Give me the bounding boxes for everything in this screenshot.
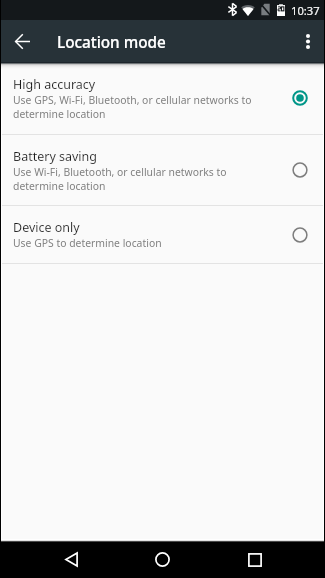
- staticText: Location mode: [57, 32, 166, 53]
- staticText: Use GPS, Wi-Fi, Bluetooth, or cellular n…: [13, 93, 258, 121]
- staticText: Battery saving: [13, 148, 97, 165]
- staticText: 10:37: [291, 3, 320, 18]
- button[interactable]: Back: [53, 541, 90, 578]
- button[interactable]: High accuracy: [0, 62, 325, 134]
- button[interactable]: Device only: [0, 206, 325, 263]
- staticText: Use GPS to determine location: [13, 236, 162, 250]
- staticText: High accuracy: [13, 76, 96, 93]
- button[interactable]: More options: [294, 20, 322, 62]
- button[interactable]: Recent apps: [236, 541, 273, 578]
- staticText: Device only: [13, 219, 80, 236]
- staticText: Use Wi-Fi, Bluetooth, or cellular networ…: [13, 165, 258, 193]
- button[interactable]: Back: [7, 20, 37, 62]
- button[interactable]: Home: [144, 541, 181, 578]
- button[interactable]: Battery saving: [0, 135, 325, 205]
